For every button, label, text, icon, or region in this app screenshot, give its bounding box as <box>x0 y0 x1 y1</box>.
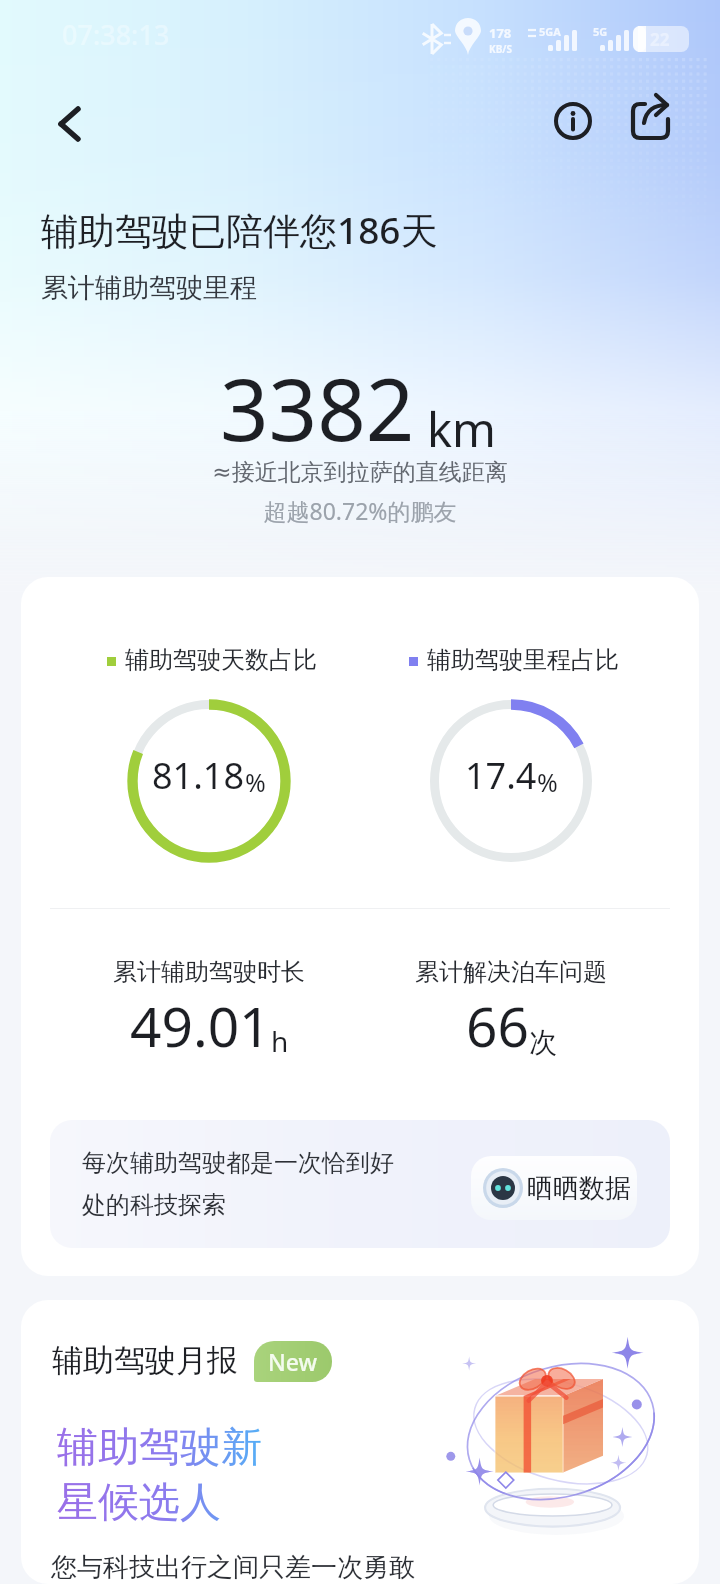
staticText: % <box>537 765 558 799</box>
button[interactable]: Share <box>624 94 678 148</box>
staticText: 5G <box>593 24 608 39</box>
staticText: 次 <box>529 1025 557 1060</box>
staticText: ≈接近北京到拉萨的直线距离 <box>0 458 720 487</box>
staticText: 3382 <box>220 350 415 466</box>
button[interactable]: Info <box>546 94 600 148</box>
staticText: km <box>427 397 497 461</box>
staticText: 178 <box>489 24 512 42</box>
staticText: 每次辅助驾驶都是一次恰到好 处的科技探索 <box>82 1148 394 1220</box>
staticText: 49.01 <box>130 988 271 1063</box>
button[interactable]: Back <box>38 92 96 150</box>
staticText: 辅助驾驶月报 <box>52 1341 238 1380</box>
staticText: 81.18 <box>152 751 245 800</box>
staticText: 累计解决泊车问题 <box>401 957 621 987</box>
button[interactable]: 晒晒数据 <box>471 1156 637 1220</box>
staticText: % <box>245 765 266 799</box>
staticText: 辅助驾驶天数占比 <box>125 645 317 675</box>
staticText: 晒晒数据 <box>527 1172 631 1205</box>
staticText: 辅助驾驶里程占比 <box>427 645 619 675</box>
staticText: 辅助驾驶新 星候选人 <box>57 1422 262 1528</box>
staticText: 5GA <box>539 24 561 39</box>
staticText: h <box>271 1022 289 1060</box>
staticText: 辅助驾驶已陪伴您186天 <box>41 204 438 255</box>
staticText: 17.4 <box>465 751 537 800</box>
staticText: 累计辅助驾驶时长 <box>99 957 319 987</box>
staticText: 22 <box>650 28 670 51</box>
staticText: 66 <box>466 988 529 1063</box>
staticText: New <box>268 1346 318 1377</box>
staticText: 超越80.72%的鹏友 <box>0 495 720 526</box>
staticText: KB/S <box>489 42 512 56</box>
staticText: 累计辅助驾驶里程 <box>41 271 257 305</box>
staticText: 您与科技出行之间只差一次勇敢 <box>51 1551 415 1584</box>
staticText: 07:38:13 <box>62 16 170 53</box>
